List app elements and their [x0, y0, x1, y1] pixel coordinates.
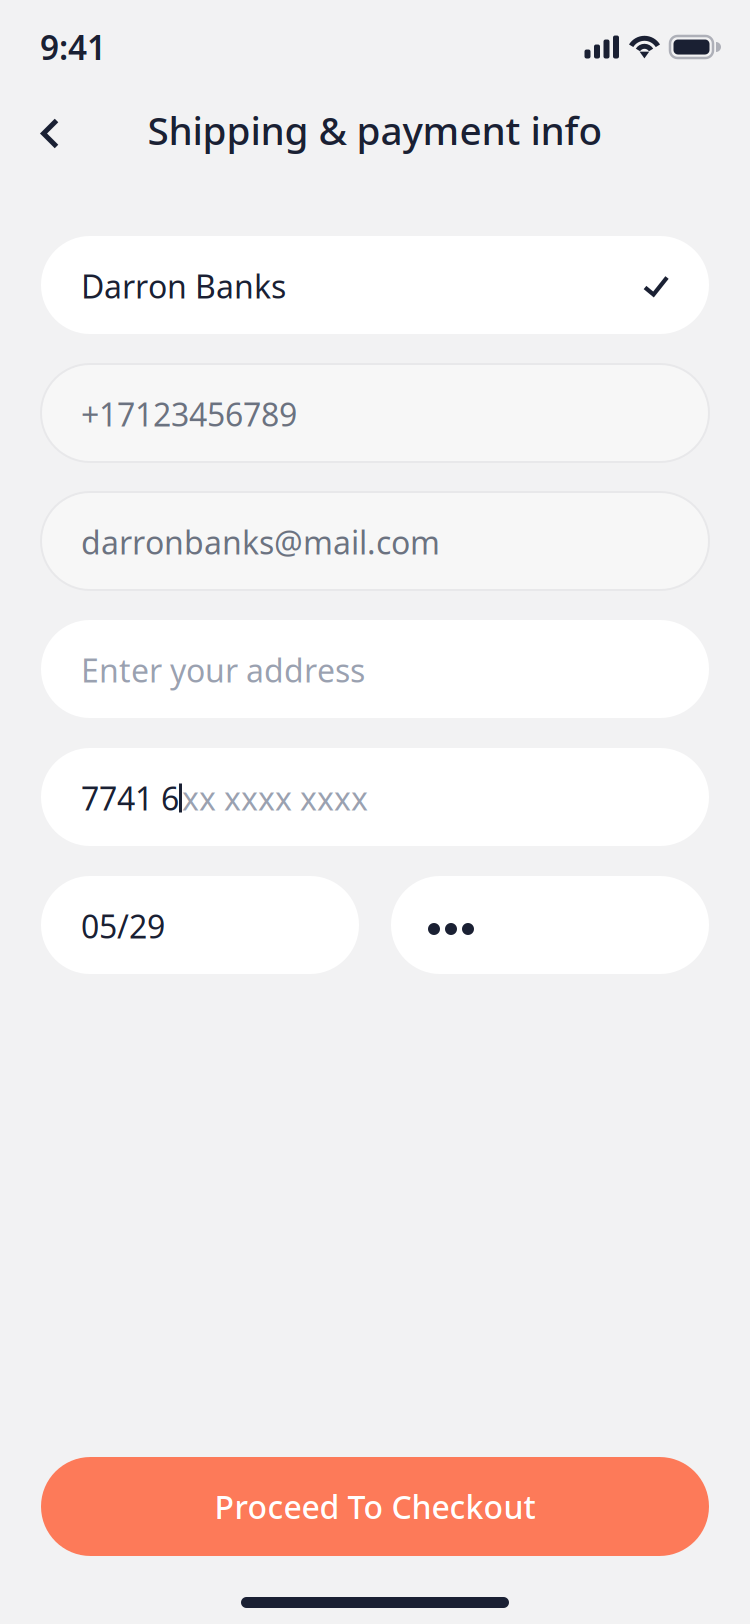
staticText: darronbanks@mail.com	[81, 521, 440, 563]
staticText: 7741 6	[81, 777, 179, 819]
button[interactable]: Enter your address	[41, 620, 709, 718]
staticText: 9:41	[40, 25, 106, 69]
staticText: 05/29	[81, 905, 165, 947]
staticText: Shipping & payment info	[147, 104, 602, 156]
staticText: Darron Banks	[81, 265, 286, 307]
button[interactable]: +17123456789	[41, 364, 709, 462]
button[interactable]: Darron Banks	[41, 236, 709, 334]
staticText: Enter your address	[81, 649, 365, 691]
button[interactable]: 7741 6	[41, 748, 709, 846]
button[interactable]: Security code	[391, 876, 709, 974]
staticText: Proceed To Checkout	[214, 1485, 535, 1528]
button[interactable]: darronbanks@mail.com	[41, 492, 709, 590]
staticText: +17123456789	[81, 393, 297, 435]
button[interactable]: Back	[16, 94, 79, 166]
button[interactable]: Proceed To Checkout	[41, 1457, 709, 1556]
button[interactable]: 05/29	[41, 876, 359, 974]
staticText: xx xxxx xxxx	[182, 777, 368, 819]
